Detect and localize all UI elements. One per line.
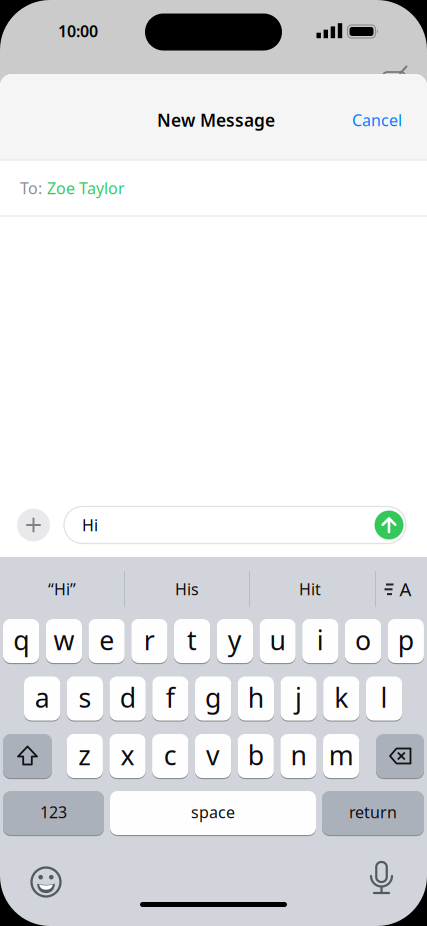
button[interactable]: n — [280, 733, 317, 779]
staticText: y — [228, 622, 242, 658]
button[interactable]: v — [195, 733, 231, 779]
staticText: g — [205, 680, 221, 715]
staticText: v — [206, 737, 220, 773]
staticText: u — [270, 622, 286, 658]
button[interactable]: h — [238, 675, 274, 721]
staticText: w — [53, 622, 74, 658]
staticText: x — [120, 737, 134, 773]
button[interactable]: u — [259, 618, 296, 664]
staticText: 10:00 — [58, 20, 98, 42]
button[interactable]: z — [67, 733, 103, 779]
staticText: “Hi” — [48, 578, 76, 600]
staticText: New Message — [157, 108, 275, 131]
staticText: Hit — [299, 578, 321, 600]
staticText: return — [349, 801, 397, 823]
button[interactable]: x — [109, 733, 146, 779]
button[interactable]: 123 — [3, 790, 104, 836]
button[interactable]: Shift — [3, 733, 52, 779]
button[interactable]: Delete — [376, 733, 424, 779]
button[interactable]: Dictate — [364, 863, 398, 897]
staticText: Zoe Taylor — [47, 177, 125, 199]
staticText: e — [99, 622, 114, 658]
button[interactable]: l — [366, 675, 402, 721]
button[interactable]: c — [152, 733, 188, 779]
button[interactable]: i — [302, 618, 338, 664]
button[interactable]: b — [238, 733, 274, 779]
button[interactable]: r — [131, 618, 167, 664]
button[interactable]: m — [323, 733, 359, 779]
button[interactable]: k — [323, 675, 359, 721]
button[interactable]: p — [388, 618, 424, 664]
button[interactable]: “Hi” — [2, 566, 122, 612]
staticText: m — [329, 737, 354, 773]
staticText: 123 — [40, 801, 67, 823]
staticText: d — [120, 680, 136, 715]
staticText: r — [144, 622, 155, 658]
staticText: t — [187, 622, 197, 658]
button[interactable]: His — [127, 566, 247, 612]
button[interactable]: Writing Tools — [377, 566, 421, 612]
button[interactable]: s — [67, 675, 103, 721]
staticText: To: — [20, 177, 42, 199]
button[interactable]: Cancel — [352, 109, 402, 131]
staticText: A — [399, 577, 411, 601]
button[interactable]: d — [109, 675, 146, 721]
button[interactable]: Hit — [250, 566, 370, 612]
staticText: k — [334, 680, 348, 715]
button[interactable]: a — [24, 675, 60, 721]
staticText: h — [248, 680, 264, 715]
button[interactable]: q — [3, 618, 39, 664]
button[interactable]: y — [217, 618, 253, 664]
staticText: Cancel — [352, 109, 402, 131]
staticText: s — [78, 680, 91, 715]
staticText: b — [248, 737, 264, 773]
staticText: o — [355, 622, 371, 658]
button[interactable]: j — [280, 675, 317, 721]
button[interactable]: e — [88, 618, 125, 664]
button[interactable]: Send — [374, 510, 403, 539]
button[interactable]: f — [152, 675, 188, 721]
staticText: a — [35, 680, 50, 715]
button[interactable]: w — [46, 618, 82, 664]
staticText: space — [191, 801, 235, 823]
staticText: Hi — [82, 514, 98, 536]
button[interactable]: space — [110, 790, 316, 836]
staticText: f — [166, 680, 175, 715]
staticText: z — [78, 737, 91, 773]
staticText: p — [398, 622, 414, 658]
staticText: j — [295, 680, 302, 715]
staticText: n — [290, 737, 306, 773]
staticText: l — [381, 680, 388, 715]
staticText: c — [164, 737, 177, 773]
button[interactable]: o — [345, 618, 381, 664]
button[interactable]: g — [195, 675, 231, 721]
button[interactable]: Apps — [17, 508, 50, 541]
staticText: q — [13, 622, 29, 658]
button[interactable]: return — [322, 790, 424, 836]
staticText: His — [175, 578, 199, 600]
button[interactable]: To: — [0, 160, 427, 215]
button[interactable]: Emoji — [29, 865, 63, 899]
staticText: i — [317, 622, 324, 658]
button[interactable]: t — [174, 618, 210, 664]
